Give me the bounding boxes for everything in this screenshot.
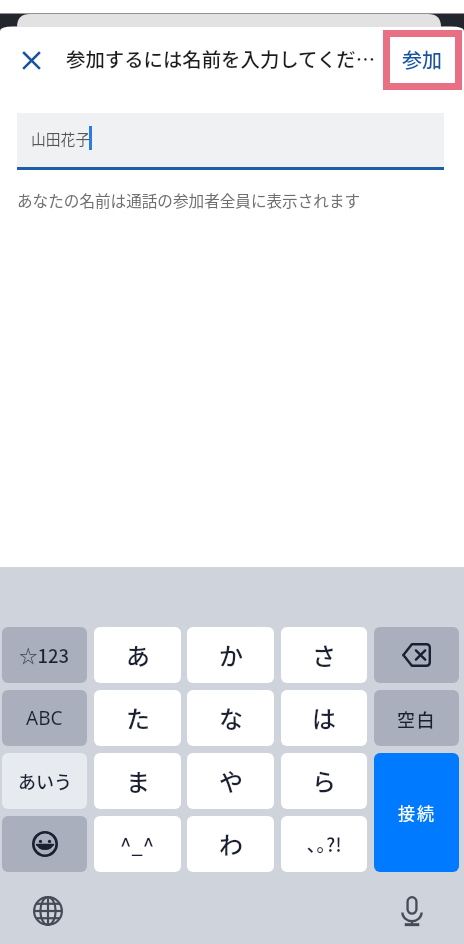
- staticText: ABC: [26, 705, 63, 731]
- button[interactable]: た: [94, 690, 181, 746]
- button[interactable]: な: [187, 690, 274, 746]
- button[interactable]: ☆123: [2, 627, 87, 683]
- button[interactable]: Delete: [374, 627, 459, 683]
- staticText: 空白: [397, 706, 436, 732]
- staticText: 接続: [398, 800, 436, 825]
- staticText: ^_^: [120, 830, 155, 859]
- button[interactable]: 接続: [374, 753, 459, 872]
- staticText: 参加: [402, 45, 442, 74]
- button[interactable]: Emoji: [2, 816, 87, 872]
- button[interactable]: さ: [281, 627, 367, 683]
- staticText: さ: [312, 637, 336, 672]
- button[interactable]: Switch keyboard: [26, 889, 70, 933]
- staticText: ､｡?!: [307, 830, 342, 858]
- button[interactable]: あ: [94, 627, 181, 683]
- staticText: あいう: [18, 768, 72, 794]
- staticText: は: [312, 700, 336, 735]
- button[interactable]: や: [187, 753, 274, 809]
- staticText: ☆123: [19, 642, 70, 669]
- staticText: ま: [126, 763, 150, 798]
- staticText: 参加するには名前を入力してくだ…: [66, 44, 386, 72]
- button[interactable]: わ: [187, 816, 274, 872]
- staticText: わ: [219, 826, 243, 861]
- button[interactable]: 参加: [396, 43, 448, 76]
- button[interactable]: Voice input: [390, 889, 434, 933]
- button[interactable]: あいう: [2, 753, 87, 809]
- staticText: や: [219, 763, 243, 798]
- button[interactable]: ABC: [2, 690, 87, 746]
- button[interactable]: ま: [94, 753, 181, 809]
- staticText: あ: [126, 637, 150, 672]
- staticText: な: [219, 700, 243, 735]
- button[interactable]: ^_^: [94, 816, 181, 872]
- button[interactable]: 山田花子: [17, 113, 444, 167]
- button[interactable]: か: [187, 627, 274, 683]
- staticText: ら: [312, 763, 336, 798]
- button[interactable]: は: [281, 690, 367, 746]
- staticText: 山田花子: [31, 128, 91, 149]
- staticText: か: [219, 637, 243, 672]
- button[interactable]: ､｡?!: [281, 816, 367, 872]
- staticText: あなたの名前は通話の参加者全員に表示されます: [17, 189, 361, 212]
- button[interactable]: ら: [281, 753, 367, 809]
- button[interactable]: 空白: [374, 690, 459, 746]
- button[interactable]: Close: [13, 42, 49, 78]
- staticText: た: [126, 700, 150, 735]
